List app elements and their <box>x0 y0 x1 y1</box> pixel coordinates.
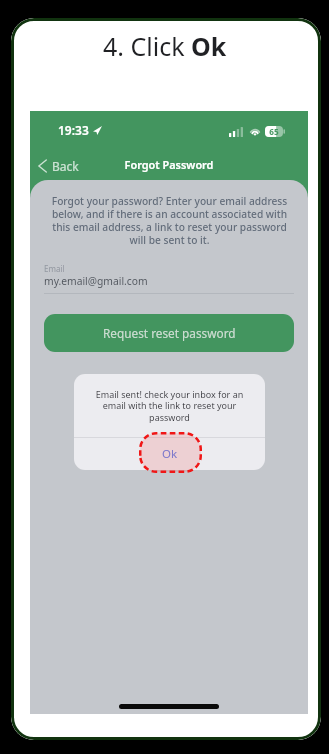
staticText: Email <box>44 263 65 274</box>
staticText: my.email@gmail.com <box>44 274 148 288</box>
staticText: 4. Click Ok <box>103 29 227 63</box>
staticText: Forgot Password <box>30 157 308 172</box>
staticText: 19:33 <box>58 122 89 138</box>
button[interactable]: Back <box>36 155 81 177</box>
button[interactable]: Ok <box>74 438 265 470</box>
staticText: Ok <box>162 446 178 462</box>
staticText: Email sent! check your inbox for an emai… <box>85 388 254 424</box>
button[interactable]: Request reset password <box>44 314 294 352</box>
staticText: 65 <box>265 126 283 137</box>
staticText: Back <box>52 158 79 174</box>
staticText: Request reset password <box>103 325 236 341</box>
staticText: Forgot your password? Enter your email a… <box>51 194 288 247</box>
